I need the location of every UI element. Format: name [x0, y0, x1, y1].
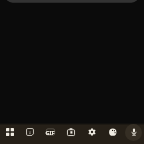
button[interactable]: Voice input [123, 123, 144, 141]
button[interactable]: Apps [0, 123, 20, 141]
button[interactable]: Settings [81, 123, 102, 141]
button[interactable]: GIF [40, 123, 60, 141]
staticText: GIF [45, 129, 55, 136]
button[interactable]: Themes [102, 123, 123, 141]
button[interactable]: Stickers [20, 123, 40, 141]
button[interactable]: Clipboard [60, 123, 81, 141]
